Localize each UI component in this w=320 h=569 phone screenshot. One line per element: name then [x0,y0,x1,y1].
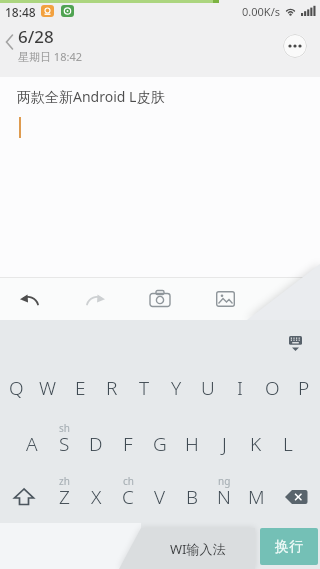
staticText: S [59,431,70,457]
staticText: L [283,431,293,457]
staticText: W [39,375,57,401]
staticText: F [123,431,133,457]
staticText: R [106,375,118,401]
button[interactable]: E [64,360,96,416]
button[interactable] [281,329,309,357]
button[interactable]: D [80,416,112,472]
staticText: N [217,484,231,510]
staticText: D [89,431,103,457]
button[interactable]: T [128,360,160,416]
button[interactable]: K [240,416,272,472]
button[interactable]: V [144,469,176,525]
button[interactable]: C [112,469,144,525]
button[interactable]: U [192,360,224,416]
button[interactable]: WI输入法 [141,528,255,569]
staticText: T [139,375,150,401]
button[interactable]: J [208,416,240,472]
button[interactable]: I [224,360,256,416]
staticText: zh [59,474,70,488]
staticText: 两款全新Android L皮肤 [17,87,165,106]
button[interactable]: A [16,416,48,472]
button[interactable]: 换行 [260,528,318,565]
button[interactable] [283,34,307,58]
staticText: M [248,484,265,510]
button[interactable]: P [288,360,320,416]
button[interactable] [138,277,182,320]
button[interactable]: W [32,360,64,416]
staticText: 0.00K/s [242,4,280,19]
button[interactable]: H [176,416,208,472]
button[interactable]: G [144,416,176,472]
staticText: C [122,484,134,510]
staticText: B [186,484,198,510]
staticText: I [237,375,243,401]
button[interactable]: L [272,416,304,472]
staticText: Z [59,484,70,510]
button[interactable]: Y [160,360,192,416]
staticText: Q [9,375,24,401]
button[interactable]: B [176,469,208,525]
staticText: X [91,484,102,510]
button[interactable] [8,277,52,320]
staticText: U [201,375,215,401]
staticText: Y [171,375,182,401]
staticText: sh [59,421,70,435]
staticText: 6/28 [18,25,54,48]
button[interactable]: Z [48,469,80,525]
staticText: ch [123,474,134,488]
staticText: 18:48 [5,4,36,20]
button[interactable] [203,277,247,320]
staticText: A [26,431,38,457]
button[interactable]: R [96,360,128,416]
button[interactable] [73,277,117,320]
staticText: E [75,375,86,401]
staticText: O [265,375,280,401]
button[interactable]: F [112,416,144,472]
button[interactable]: X [80,469,112,525]
staticText: 星期日 18:42 [18,49,82,64]
button[interactable]: S [48,416,80,472]
button[interactable] [272,469,320,525]
staticText: H [185,431,199,457]
button[interactable]: N [208,469,240,525]
staticText: 换行 [275,538,303,556]
staticText: WI输入法 [170,540,226,558]
staticText: J [222,431,227,457]
button[interactable]: O [256,360,288,416]
button[interactable] [0,469,48,525]
staticText: ng [218,474,231,488]
button[interactable]: M [240,469,272,525]
staticText: V [154,484,166,510]
staticText: G [153,431,167,457]
staticText: K [250,431,262,457]
staticText: P [298,375,310,401]
button[interactable] [0,523,141,569]
button[interactable]: Q [0,360,32,416]
